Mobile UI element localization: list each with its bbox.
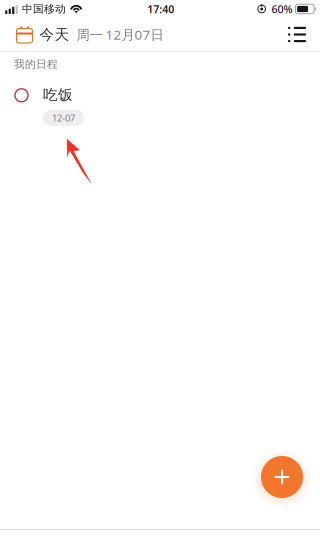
- staticText: 周一 12月07日: [76, 26, 163, 43]
- staticText: 今天: [39, 25, 69, 43]
- staticText: 吃饭: [43, 86, 73, 104]
- button[interactable]: 吃饭: [0, 77, 320, 134]
- staticText: 17:40: [147, 2, 174, 16]
- staticText: 12-07: [52, 112, 75, 124]
- staticText: 中国移动: [22, 2, 66, 15]
- button[interactable]: 新建日程: [256, 451, 308, 503]
- staticText: 我的日程: [14, 58, 58, 71]
- button[interactable]: 列表: [278, 18, 316, 50]
- staticText: 60%: [271, 2, 292, 16]
